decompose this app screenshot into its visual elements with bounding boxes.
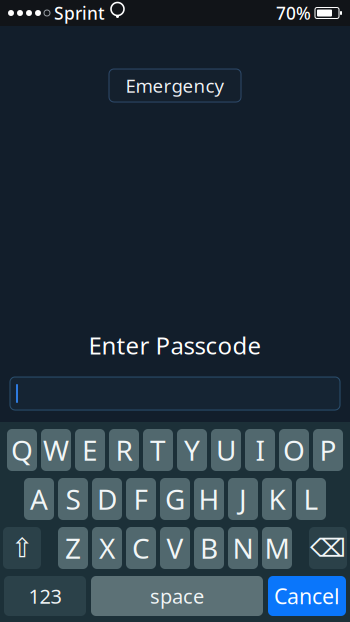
button[interactable]: A: [24, 478, 54, 520]
button[interactable]: K: [262, 478, 292, 520]
staticText: N: [232, 529, 253, 567]
button[interactable]: T: [143, 429, 173, 471]
button[interactable]: V: [160, 527, 190, 569]
staticText: J: [239, 480, 247, 518]
button[interactable]: C: [126, 527, 156, 569]
button[interactable]: U: [211, 429, 241, 471]
staticText: Sprint: [54, 1, 105, 24]
staticText: D: [97, 480, 117, 518]
staticText: Enter Passcode: [88, 329, 261, 361]
button[interactable]: Emergency: [109, 69, 241, 102]
button[interactable]: X: [92, 527, 122, 569]
staticText: L: [303, 480, 318, 518]
staticText: Z: [65, 529, 81, 567]
staticText: Q: [11, 431, 33, 469]
button[interactable]: 123: [4, 576, 86, 616]
button[interactable]: L: [296, 478, 326, 520]
staticText: M: [264, 529, 289, 567]
staticText: P: [319, 431, 336, 469]
staticText: A: [30, 480, 48, 518]
button[interactable]: G: [160, 478, 190, 520]
staticText: 123: [28, 583, 61, 609]
button[interactable]: I: [245, 429, 275, 471]
button[interactable]: Z: [58, 527, 88, 569]
button[interactable]: Cancel: [268, 576, 346, 616]
staticText: B: [200, 529, 218, 567]
staticText: C: [132, 529, 150, 567]
button[interactable]: S: [58, 478, 88, 520]
button[interactable]: J: [228, 478, 258, 520]
button[interactable]: D: [92, 478, 122, 520]
staticText: E: [82, 431, 98, 469]
staticText: I: [255, 431, 264, 469]
button[interactable]: P: [313, 429, 343, 471]
button[interactable]: Q: [7, 429, 37, 471]
staticText: K: [268, 480, 285, 518]
staticText: U: [216, 431, 236, 469]
staticText: T: [150, 431, 166, 469]
staticText: Y: [184, 431, 200, 469]
staticText: O: [283, 431, 305, 469]
staticText: W: [43, 431, 69, 469]
button[interactable]: F: [126, 478, 156, 520]
staticText: space: [150, 583, 204, 609]
staticText: Cancel: [274, 582, 340, 610]
button[interactable]: N: [228, 527, 258, 569]
staticText: H: [198, 480, 219, 518]
staticText: F: [133, 480, 148, 518]
staticText: ⌫: [310, 534, 346, 562]
staticText: 70%: [276, 1, 311, 24]
staticText: V: [166, 529, 183, 567]
staticText: R: [115, 431, 132, 469]
button[interactable]: R: [109, 429, 139, 471]
staticText: ⇧: [11, 533, 33, 563]
button[interactable]: M: [262, 527, 292, 569]
staticText: S: [65, 480, 80, 518]
button[interactable]: Delete: [309, 527, 347, 569]
button[interactable]: O: [279, 429, 309, 471]
staticText: Emergency: [125, 73, 224, 98]
staticText: X: [99, 529, 115, 567]
button[interactable]: space: [91, 576, 263, 616]
button[interactable]: E: [75, 429, 105, 471]
button[interactable]: Y: [177, 429, 207, 471]
button[interactable]: H: [194, 478, 224, 520]
button[interactable]: B: [194, 527, 224, 569]
button[interactable]: Shift: [3, 527, 41, 569]
staticText: G: [165, 480, 185, 518]
button[interactable]: W: [41, 429, 71, 471]
